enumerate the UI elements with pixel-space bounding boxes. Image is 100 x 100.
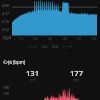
staticText: 131 [26, 68, 40, 78]
staticText: 177 [70, 68, 84, 78]
staticText: 4.0 [63, 37, 68, 41]
staticText: 0.0 [4, 37, 9, 41]
staticText: 5:15 [2, 19, 9, 24]
button[interactable]: ピッチ [63, 45, 73, 49]
staticText: 4:00 [2, 3, 9, 8]
staticText: 11:14 [2, 35, 11, 40]
staticText: 平均 [30, 78, 36, 82]
staticText: 標高 [52, 45, 59, 49]
staticText: 3.0 [48, 37, 53, 41]
staticText: 120 [3, 91, 9, 96]
staticText: 心拍 [41, 45, 48, 49]
staticText: 4:37 [2, 11, 9, 16]
staticText: 180 [3, 85, 9, 90]
staticText: 1.0 [19, 37, 24, 41]
staticText: ペース [27, 45, 37, 49]
staticText: 心拍 (bpm) [3, 59, 26, 65]
staticText: 6.0 [92, 37, 97, 41]
staticText: 5:52 [2, 27, 9, 32]
button[interactable]: 標高 [52, 45, 59, 49]
button[interactable]: ペース [27, 45, 37, 49]
staticText: 最大 [74, 78, 80, 82]
staticText: 2.0 [33, 37, 38, 41]
staticText: ピッチ [63, 45, 73, 49]
staticText: 5.0 [77, 37, 82, 41]
button[interactable]: 心拍 [41, 45, 48, 49]
